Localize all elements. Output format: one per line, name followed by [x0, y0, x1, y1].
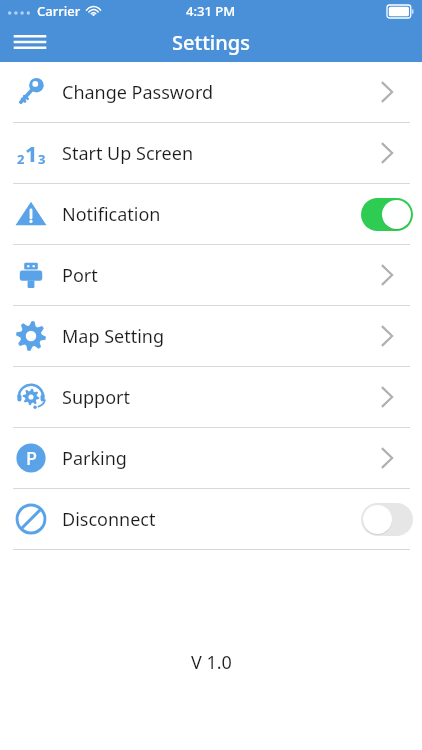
staticText: Parking [62, 446, 352, 471]
button[interactable]: Toggle on [361, 198, 413, 231]
staticText: Carrier [37, 2, 81, 20]
button[interactable]: Support [0, 367, 422, 427]
staticText: 2 [17, 150, 25, 168]
button[interactable]: Notification [0, 184, 422, 244]
button[interactable]: Menu [10, 22, 50, 62]
staticText: P [26, 446, 37, 471]
staticText: Map Setting [62, 324, 352, 349]
staticText: Notification [62, 202, 352, 227]
button[interactable]: Change Password [0, 62, 422, 122]
staticText: Disconnect [62, 507, 352, 532]
staticText: Support [62, 385, 352, 410]
staticText: Settings [172, 29, 250, 56]
button[interactable]: Port [0, 245, 422, 305]
button[interactable]: Disconnect [0, 489, 422, 549]
staticText: Start Up Screen [62, 141, 352, 166]
staticText: 4:31 PM [186, 2, 236, 20]
staticText: Change Password [62, 80, 352, 105]
button[interactable]: Map Setting [0, 306, 422, 366]
staticText: V 1.0 [191, 650, 232, 675]
button[interactable]: 2 [0, 123, 422, 183]
staticText: Port [62, 263, 352, 288]
button[interactable]: P [0, 428, 422, 488]
staticText: 3 [38, 150, 46, 168]
staticText: 1 [25, 138, 38, 168]
button[interactable]: Toggle off [361, 503, 413, 536]
